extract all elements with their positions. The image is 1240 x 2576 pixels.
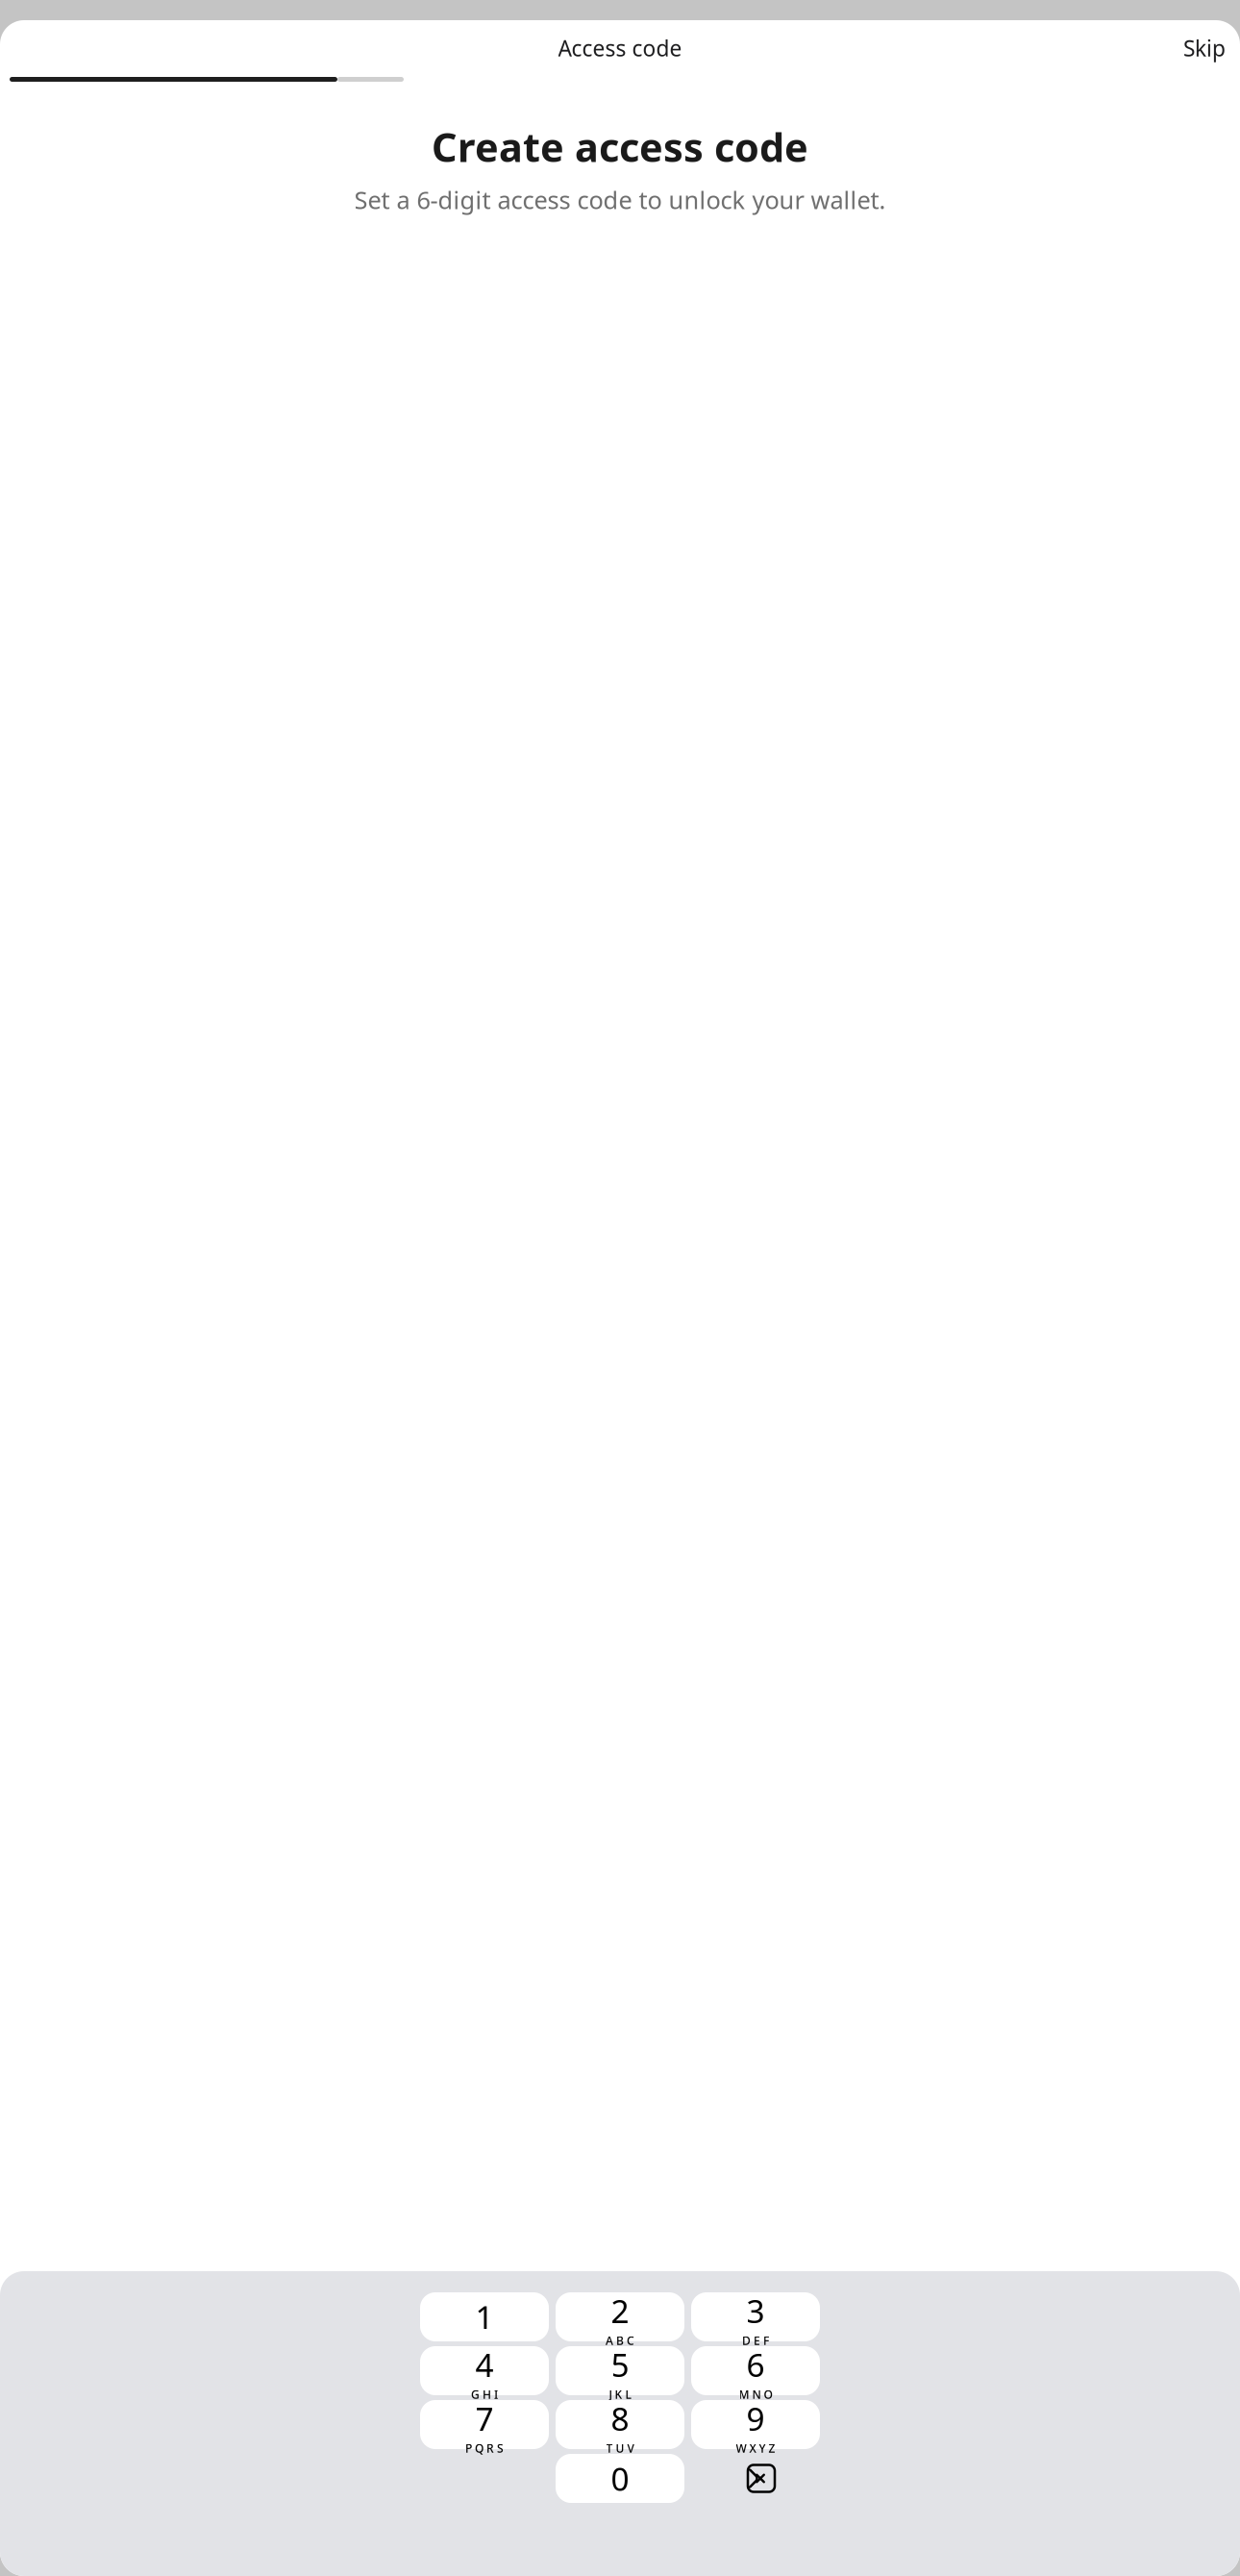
- staticText: D E F: [742, 2333, 769, 2348]
- staticText: 0: [611, 2457, 629, 2500]
- button[interactable]: 8: [556, 2400, 684, 2449]
- button[interactable]: 0: [556, 2454, 684, 2503]
- staticText: 9: [746, 2397, 765, 2440]
- button[interactable]: Skip: [1169, 24, 1240, 72]
- button[interactable]: 2: [556, 2292, 684, 2341]
- staticText: 1: [475, 2296, 494, 2338]
- staticText: Skip: [1183, 34, 1226, 63]
- button[interactable]: 7: [420, 2400, 549, 2449]
- button[interactable]: 5: [556, 2346, 684, 2395]
- staticText: W X Y Z: [736, 2441, 775, 2456]
- staticText: Create access code: [432, 120, 808, 173]
- button[interactable]: Delete: [691, 2454, 820, 2503]
- staticText: 4: [475, 2343, 494, 2386]
- button[interactable]: 4: [420, 2346, 549, 2395]
- staticText: J K L: [609, 2387, 631, 2402]
- staticText: 8: [611, 2397, 629, 2440]
- button[interactable]: 9: [691, 2400, 820, 2449]
- staticText: P Q R S: [465, 2441, 504, 2456]
- staticText: G H I: [471, 2387, 498, 2402]
- staticText: A B C: [606, 2333, 634, 2348]
- button[interactable]: 1: [420, 2292, 549, 2341]
- button[interactable]: 3: [691, 2292, 820, 2341]
- staticText: 6: [746, 2343, 765, 2386]
- button[interactable]: 6: [691, 2346, 820, 2395]
- staticText: M N O: [739, 2387, 772, 2402]
- staticText: 2: [611, 2289, 629, 2332]
- staticText: 7: [475, 2397, 494, 2440]
- staticText: 3: [746, 2289, 765, 2332]
- staticText: Set a 6-digit access code to unlock your…: [354, 184, 886, 216]
- staticText: Access code: [558, 34, 682, 63]
- staticText: T U V: [606, 2441, 634, 2456]
- staticText: 5: [611, 2343, 629, 2386]
